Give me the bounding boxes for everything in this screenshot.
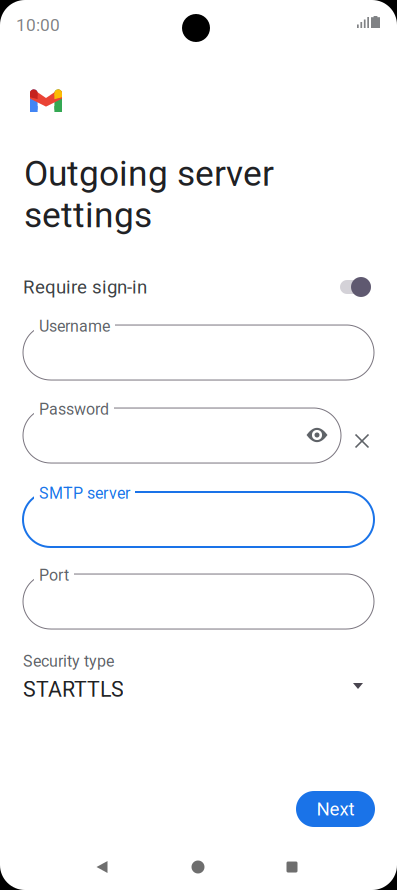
button[interactable]: Username	[23, 325, 374, 380]
button[interactable]: Next	[296, 791, 375, 827]
staticText: Port	[39, 566, 69, 585]
staticText: 10:00	[16, 15, 60, 35]
button[interactable]: Port	[23, 574, 374, 629]
button[interactable]: Show password	[300, 418, 334, 452]
button[interactable]: Security type	[23, 652, 374, 702]
staticText: STARTTLS	[23, 677, 124, 702]
staticText: Outgoing server settings	[24, 153, 274, 236]
staticText: Require sign-in	[23, 276, 147, 298]
button[interactable]: SMTP server	[23, 492, 374, 547]
staticText: SMTP server	[39, 484, 130, 503]
button[interactable]: Require sign-in	[23, 275, 371, 299]
staticText: Username	[39, 317, 110, 336]
button[interactable]: Home	[174, 847, 222, 887]
button[interactable]: Recent apps	[268, 847, 316, 887]
button[interactable]: Password	[23, 408, 341, 463]
staticText: Password	[39, 400, 109, 419]
staticText: Security type	[23, 652, 114, 671]
staticText: Next	[316, 798, 354, 820]
button[interactable]: Back	[78, 847, 126, 887]
button[interactable]: Clear password	[345, 424, 379, 458]
